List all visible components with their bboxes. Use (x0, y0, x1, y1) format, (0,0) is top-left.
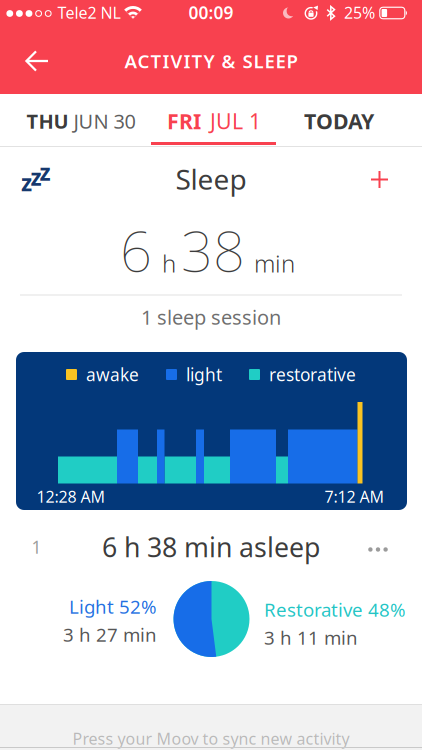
staticText: Light 52% (69, 594, 157, 619)
staticText: z (39, 157, 50, 187)
staticText: restorative (269, 363, 356, 386)
staticText: ACTIVITY & SLEEP (124, 49, 297, 73)
staticText: 7:12 AM (324, 486, 384, 507)
staticText: 25% (344, 2, 375, 23)
staticText: Tele2 NL (57, 2, 120, 23)
staticText: z (21, 167, 32, 197)
button[interactable] (15, 39, 59, 83)
staticText: FRI (167, 107, 201, 135)
staticText: TODAY (304, 107, 374, 135)
staticText: 3 h 27 min (63, 622, 157, 647)
staticText: min (254, 247, 295, 279)
staticText: 1 (31, 535, 41, 558)
button[interactable] (358, 529, 398, 569)
button[interactable]: TODAY (279, 95, 399, 147)
staticText: THU (26, 108, 68, 134)
staticText: 00:09 (188, 1, 233, 24)
staticText: 12:28 AM (36, 486, 105, 507)
staticText: Sleep (175, 160, 246, 198)
staticText: JUL 1 (210, 107, 261, 135)
staticText: 3 h 11 min (264, 625, 358, 650)
staticText: h (162, 247, 176, 279)
button[interactable] (357, 157, 401, 201)
staticText: 6 h 38 min asleep (102, 529, 320, 565)
staticText: awake (86, 363, 139, 386)
staticText: 6 (120, 213, 152, 287)
button[interactable]: FRI (151, 95, 277, 147)
button[interactable]: THU (16, 95, 146, 147)
staticText: light (186, 363, 222, 386)
staticText: Press your Moov to sync new activity (72, 728, 349, 749)
staticText: z (30, 162, 41, 192)
staticText: 1 sleep session (141, 304, 281, 330)
staticText: Restorative 48% (264, 597, 406, 622)
staticText: JUN 30 (73, 108, 135, 134)
staticText: 38 (181, 213, 245, 287)
